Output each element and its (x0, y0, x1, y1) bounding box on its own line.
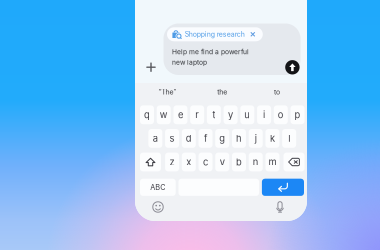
button[interactable]: to (250, 86, 304, 98)
button[interactable]: v (215, 153, 229, 171)
button[interactable]: d (182, 129, 196, 148)
staticText: l (288, 133, 290, 144)
staticText: s (170, 133, 175, 144)
staticText: j (255, 133, 257, 144)
staticText: m (268, 156, 276, 168)
staticText: f (204, 133, 207, 144)
button[interactable]: q (140, 105, 154, 124)
staticText: a (153, 133, 158, 144)
button[interactable]: w (157, 105, 171, 124)
button[interactable]: i (257, 105, 271, 124)
staticText: u (244, 109, 250, 120)
staticText: r (195, 109, 199, 120)
button[interactable]: s (165, 129, 179, 148)
button[interactable]: y (224, 105, 238, 124)
button[interactable]: h (232, 129, 246, 148)
button[interactable]: Send (285, 60, 300, 75)
button[interactable]: b (232, 153, 246, 171)
button[interactable]: Shopping research (167, 27, 263, 41)
button[interactable]: e (173, 105, 187, 124)
button[interactable]: Return (262, 179, 304, 196)
staticText: t (212, 109, 215, 120)
staticText: w (160, 109, 168, 120)
staticText: o (278, 109, 284, 120)
button[interactable]: j (249, 129, 263, 148)
staticText: v (220, 156, 225, 168)
button[interactable]: Shift (140, 153, 161, 171)
button[interactable]: m (265, 153, 279, 171)
staticText: i (263, 109, 265, 120)
button[interactable]: c (199, 153, 213, 171)
staticText: new laptop (172, 58, 207, 66)
staticText: y (228, 109, 233, 120)
staticText: z (170, 156, 175, 168)
staticText: Help me find a powerful (172, 48, 249, 56)
button[interactable]: “The” (140, 86, 195, 98)
staticText: x (186, 156, 191, 168)
staticText: the (217, 88, 227, 96)
button[interactable]: t (207, 105, 221, 124)
button[interactable]: ABC (140, 179, 176, 196)
button[interactable]: p (290, 105, 304, 124)
button[interactable]: g (215, 129, 229, 148)
staticText: q (144, 109, 150, 120)
button[interactable]: Dictate (274, 201, 286, 213)
staticText: “The” (158, 88, 176, 96)
staticText: ABC (150, 183, 165, 192)
staticText: b (236, 156, 242, 168)
button[interactable]: a (148, 129, 162, 148)
button[interactable]: Add attachment (142, 59, 159, 76)
button[interactable]: Delete (283, 153, 304, 171)
button[interactable]: z (165, 153, 179, 171)
button[interactable]: x (182, 153, 196, 171)
button[interactable]: Emoji (152, 201, 164, 213)
button[interactable]: f (198, 129, 212, 148)
staticText: Shopping research (185, 30, 245, 38)
staticText: k (270, 133, 275, 144)
button[interactable]: r (190, 105, 204, 124)
button[interactable]: l (282, 129, 296, 148)
button[interactable]: k (265, 129, 279, 148)
staticText: d (186, 133, 192, 144)
staticText: to (274, 88, 280, 96)
button[interactable]: o (274, 105, 288, 124)
staticText: e (178, 109, 183, 120)
button[interactable]: u (240, 105, 254, 124)
staticText: c (203, 156, 208, 168)
staticText: n (253, 156, 259, 168)
button[interactable]: n (249, 153, 263, 171)
staticText: h (236, 133, 242, 144)
staticText: g (219, 133, 225, 144)
staticText: p (294, 109, 300, 120)
button[interactable]: the (195, 86, 250, 98)
